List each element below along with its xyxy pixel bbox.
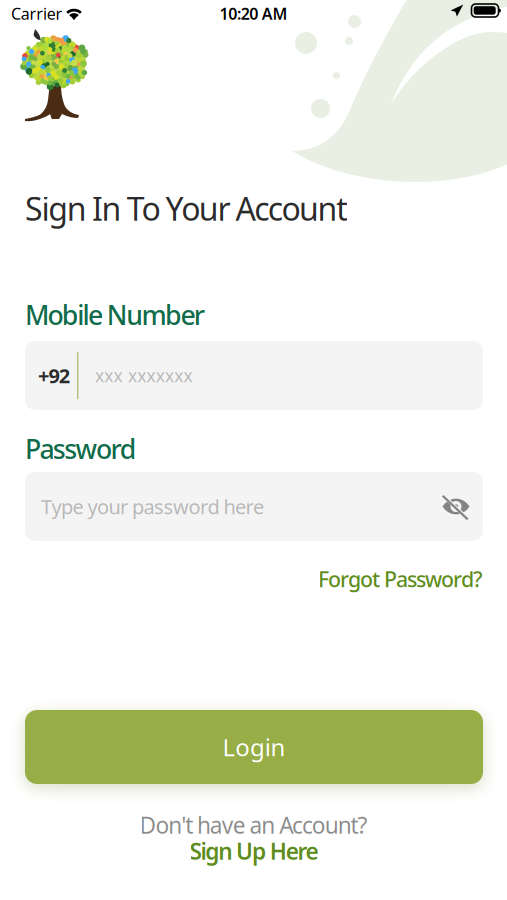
staticText: +92 [38,362,70,389]
button[interactable]: Show password [25,472,79,541]
staticText: Password [25,431,137,466]
staticText: Mobile Number [25,297,205,332]
staticText: Sign Up Here [189,836,318,866]
button[interactable]: Login [25,710,483,784]
staticText: Forgot Password? [318,565,483,593]
button[interactable]: Forgot Password? [315,564,483,594]
staticText: Carrier [11,3,62,24]
staticText: Type your password here [41,493,264,520]
staticText: Sign In To Your Account [25,187,348,229]
staticText: xxx xxxxxxx [95,364,192,387]
staticText: Login [222,731,286,763]
staticText: Don't have an Account? [139,810,367,840]
button[interactable]: Sign Up Here [186,837,322,865]
staticText: 10:20 AM [219,3,287,24]
button[interactable]: Password [25,472,483,541]
button[interactable]: Mobile number [25,341,483,410]
